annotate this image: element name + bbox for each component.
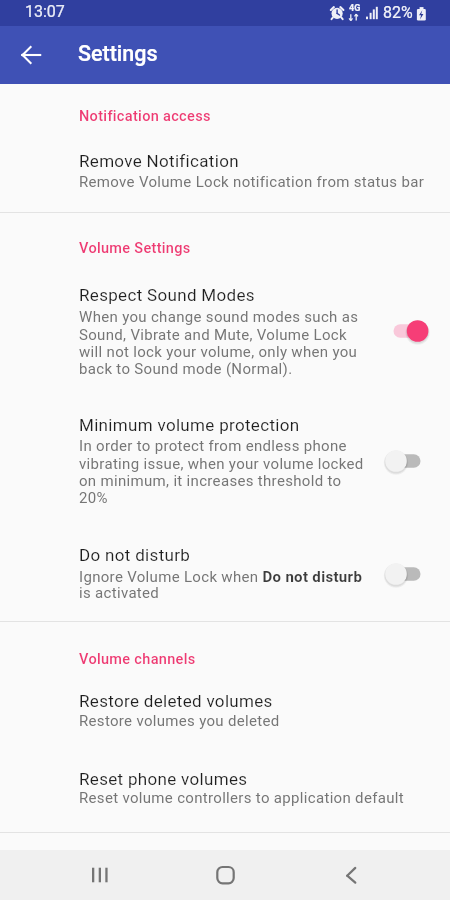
staticText: When you change sound modes such as Soun… xyxy=(79,308,372,377)
button[interactable]: Toggle on xyxy=(380,313,434,349)
staticText: Reset volume controllers to application … xyxy=(79,789,450,807)
staticText: Minimum volume protection xyxy=(79,415,450,435)
staticText: 13:07 xyxy=(25,2,65,21)
button[interactable]: Recent apps xyxy=(70,850,130,900)
staticText: Do not disturb xyxy=(79,545,450,565)
staticText: Restore volumes you deleted xyxy=(79,712,450,730)
button[interactable]: Back xyxy=(320,850,380,900)
button[interactable]: Toggle off xyxy=(380,556,434,592)
button[interactable]: Back xyxy=(7,31,55,79)
staticText: Restore deleted volumes xyxy=(79,691,450,711)
staticText: Remove Volume Lock notification from sta… xyxy=(79,173,450,191)
staticText: Settings xyxy=(78,41,158,66)
staticText: Remove Notification xyxy=(79,151,450,171)
staticText: Volume Settings xyxy=(79,240,450,257)
staticText: Volume channels xyxy=(79,651,450,668)
staticText: Respect Sound Modes xyxy=(79,285,450,305)
button[interactable]: Toggle off xyxy=(380,443,434,479)
staticText: 4G xyxy=(349,3,361,14)
button[interactable]: Home xyxy=(195,850,255,900)
staticText: Reset phone volumes xyxy=(79,769,450,789)
staticText: Notification access xyxy=(79,108,450,125)
staticText: Ignore Volume Lock when Do not disturb i… xyxy=(79,568,376,601)
staticText: In order to protect from endless phone v… xyxy=(79,437,372,506)
staticText: 82% xyxy=(383,3,413,22)
